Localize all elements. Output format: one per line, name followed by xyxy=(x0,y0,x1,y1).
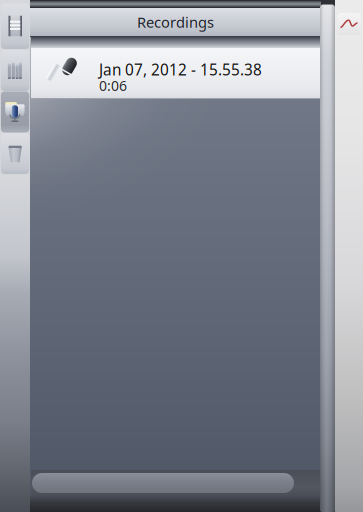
staticText: 0:06 xyxy=(99,76,127,90)
button[interactable]: Waveform xyxy=(337,13,361,35)
staticText: Jan 07, 2012 - 15.55.38 xyxy=(99,59,262,74)
button[interactable]: Jan 07, 2012 - 15.55.38 xyxy=(31,48,320,99)
button[interactable]: Levels xyxy=(1,50,29,91)
staticText: Recordings xyxy=(137,12,214,32)
button[interactable]: Voice Memos xyxy=(1,91,29,132)
button[interactable]: Library xyxy=(1,3,29,49)
button[interactable]: Trash xyxy=(1,133,29,174)
